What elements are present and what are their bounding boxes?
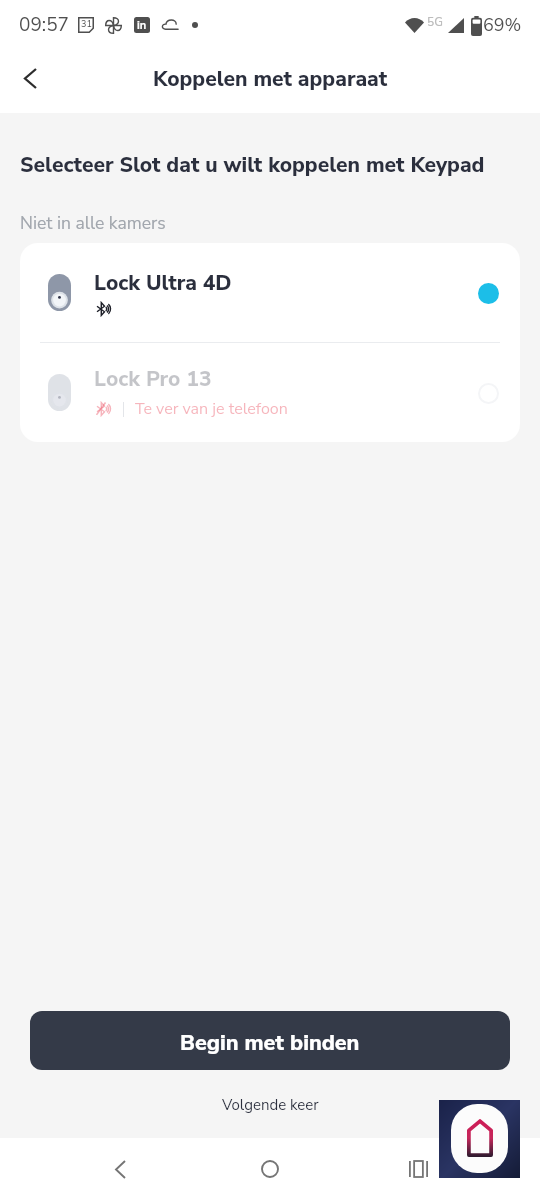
staticText: Te ver van je telefoon: [135, 398, 288, 420]
button[interactable]: Nuki app: [439, 1100, 520, 1178]
button[interactable]: Recente apps: [396, 1147, 440, 1191]
button[interactable]: Terug: [1, 49, 59, 107]
button[interactable]: Terug: [98, 1147, 142, 1191]
staticText: 09:57: [19, 12, 69, 38]
button[interactable]: Volgende keer: [208, 1091, 333, 1119]
button[interactable]: Home: [248, 1147, 292, 1191]
button[interactable]: Lock Ultra 4D: [20, 243, 520, 342]
staticText: Lock Pro 13: [94, 365, 212, 394]
button[interactable]: Geselecteerd: [465, 270, 511, 316]
staticText: 5G: [427, 14, 443, 30]
staticText: Begin met binden: [180, 1028, 360, 1057]
staticText: Lock Ultra 4D: [94, 269, 232, 298]
staticText: 69%: [483, 13, 522, 38]
staticText: Niet in alle kamers: [20, 211, 166, 235]
staticText: Selecteer Slot dat u wilt koppelen met K…: [20, 151, 485, 180]
staticText: in: [137, 18, 147, 33]
staticText: 31: [81, 18, 92, 30]
button[interactable]: Lock Pro 13: [20, 343, 520, 442]
staticText: Koppelen met apparaat: [153, 65, 388, 94]
button[interactable]: Begin met binden: [30, 1011, 510, 1070]
